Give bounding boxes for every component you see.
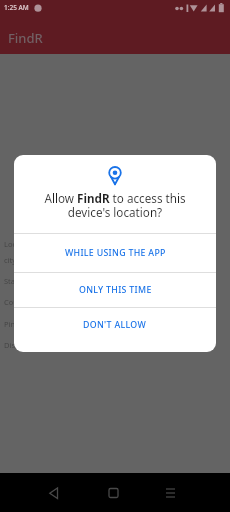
button[interactable]: DON'T ALLOW bbox=[14, 308, 216, 341]
button[interactable] bbox=[154, 477, 186, 509]
staticText: FindR bbox=[8, 29, 43, 47]
button[interactable]: ONLY THIS TIME bbox=[14, 273, 216, 307]
staticText: Country : bbox=[4, 297, 37, 307]
staticText: DON'T ALLOW bbox=[83, 319, 147, 331]
staticText: city : bbox=[4, 255, 21, 265]
staticText: ONLY THIS TIME bbox=[79, 284, 152, 296]
staticText: Pincode : bbox=[4, 319, 37, 329]
button[interactable] bbox=[38, 477, 70, 509]
staticText: Location : bbox=[4, 239, 39, 249]
staticText: Allow FindR to access this device's loca… bbox=[14, 190, 216, 220]
staticText: State : bbox=[4, 276, 26, 286]
staticText: 1:25 AM bbox=[4, 3, 29, 12]
button[interactable] bbox=[97, 477, 129, 509]
staticText: WHILE USING THE APP bbox=[65, 247, 166, 259]
button[interactable]: WHILE USING THE APP bbox=[14, 234, 216, 272]
staticText: District : bbox=[4, 340, 34, 350]
